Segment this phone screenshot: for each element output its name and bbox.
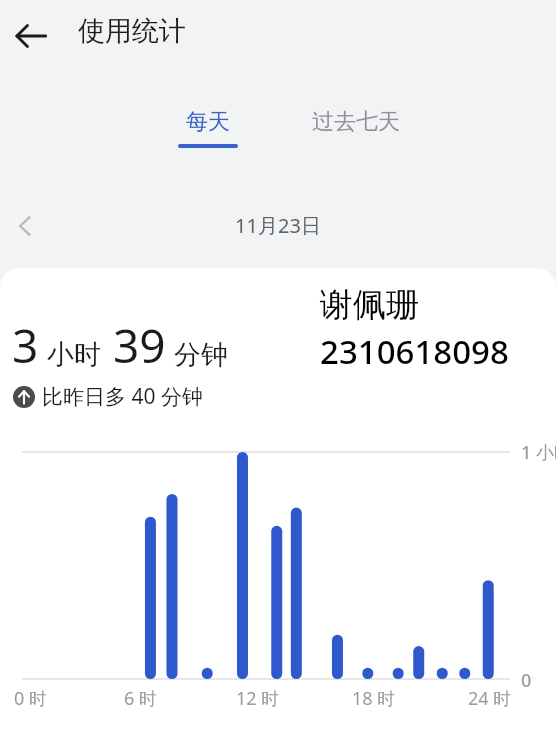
staticText: 18 时 [352, 686, 396, 711]
staticText: 24 时 [468, 686, 512, 711]
staticText: 3 [12, 314, 39, 377]
staticText: 11月23日 [0, 212, 556, 239]
staticText: 12 时 [236, 686, 280, 711]
staticText: 每天 [186, 108, 230, 136]
staticText: 6 时 [124, 686, 157, 711]
staticText: 分钟 [174, 338, 228, 372]
staticText: 小时 [47, 338, 101, 372]
button[interactable]: Back [8, 13, 54, 59]
staticText: 比昨日多 40 分钟 [42, 382, 203, 411]
staticText: 过去七天 [312, 108, 400, 136]
staticText: 0 时 [14, 686, 47, 711]
button[interactable]: 过去七天 [312, 108, 400, 136]
staticText: 使用统计 [78, 14, 186, 48]
button[interactable]: Previous day [2, 203, 48, 249]
staticText: 2310618098 [320, 329, 509, 374]
staticText: 谢佩珊 [320, 284, 419, 326]
button[interactable]: 每天 [178, 108, 238, 148]
staticText: 1 小时 [521, 440, 556, 465]
staticText: 0 [521, 668, 532, 693]
staticText: 39 [113, 314, 166, 377]
